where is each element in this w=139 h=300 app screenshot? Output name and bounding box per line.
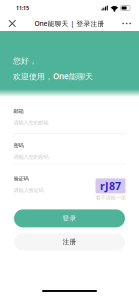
staticText: 登录	[62, 214, 76, 222]
staticText: 看不清换一张	[95, 194, 125, 201]
button[interactable]: 注册	[14, 233, 125, 250]
button[interactable]: Close	[3, 16, 21, 31]
staticText: 密码	[13, 142, 23, 149]
staticText: 注册	[62, 238, 76, 246]
staticText: 您好，	[13, 56, 37, 66]
staticText: 请输入您的邮箱	[13, 120, 48, 126]
staticText: 欢迎使用，One能聊天	[13, 71, 93, 81]
staticText: 请输入您的密码	[13, 154, 48, 160]
staticText: 请输入验证码	[13, 187, 43, 194]
staticText: rJ87	[100, 179, 121, 193]
staticText: 验证码	[13, 175, 28, 182]
staticText: 11:15	[16, 4, 29, 12]
button[interactable]: More options	[117, 16, 136, 31]
staticText: One能聊天 | 登录注册	[34, 19, 104, 28]
staticText: 邮箱	[13, 108, 23, 115]
button[interactable]: 登录	[14, 209, 125, 227]
button[interactable]: rJ87	[95, 169, 125, 201]
